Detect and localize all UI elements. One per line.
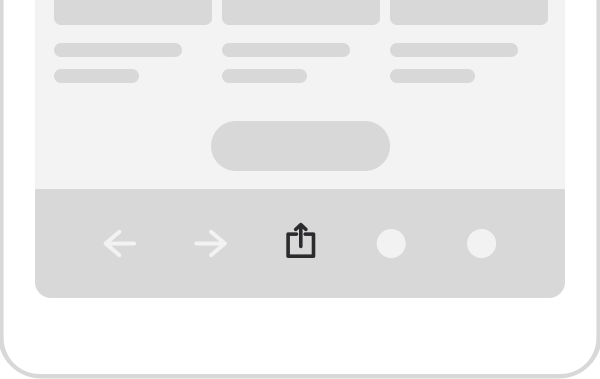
button[interactable]: Bookmarks [346, 189, 436, 298]
button[interactable]: Back [75, 189, 165, 298]
button[interactable]: Share [256, 189, 346, 298]
button[interactable]: Tabs [436, 189, 527, 298]
button[interactable]: Forward [165, 189, 256, 298]
